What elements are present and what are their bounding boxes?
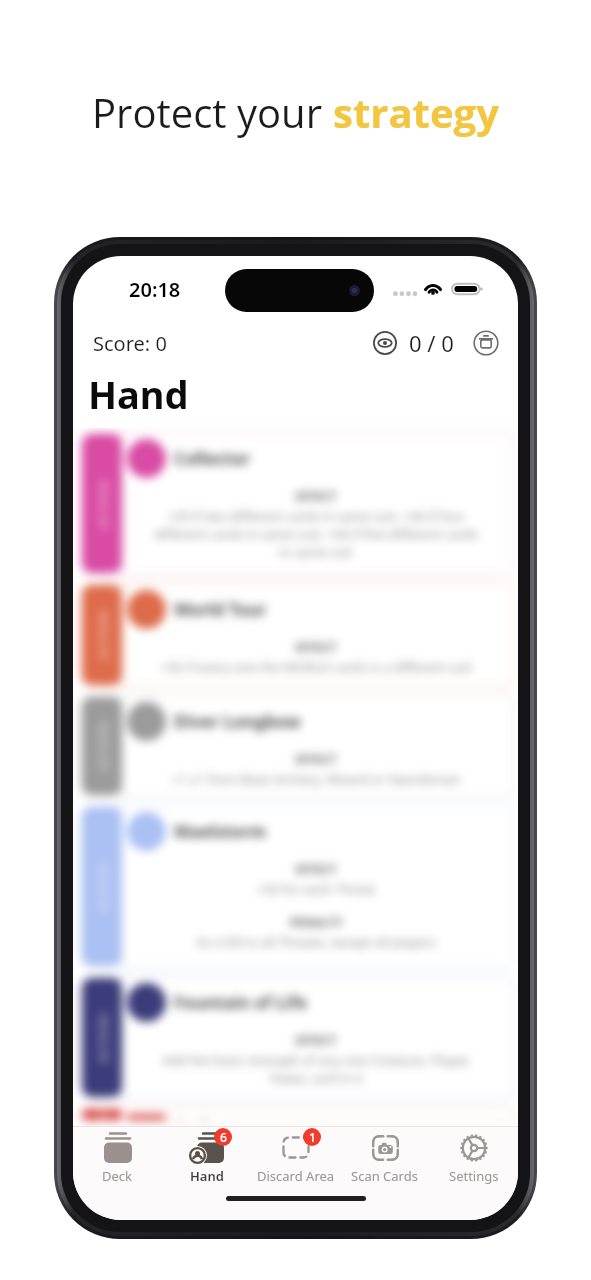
staticText: Score: 0 [93, 330, 167, 357]
staticText: EFFECT [127, 488, 505, 504]
staticText: Deck [102, 1167, 133, 1185]
staticText: Collector [174, 447, 251, 470]
staticText: Fountain of Life [174, 991, 308, 1014]
button[interactable]: 1 [251, 1127, 340, 1189]
staticText: PENALTY [127, 914, 505, 930]
staticText: +50 if every one the WORLD cards is a di… [147, 658, 485, 676]
staticText: ACTION [93, 609, 111, 660]
staticText: Hand [88, 368, 189, 420]
staticText: Maelstorm [174, 820, 267, 843]
staticText: Scan Cards [351, 1167, 418, 1185]
button[interactable]: Preview [373, 331, 397, 355]
button[interactable]: Delete [473, 330, 499, 356]
button[interactable]: ACTION [78, 1105, 517, 1124]
staticText: 0 / 0 [409, 328, 454, 358]
button[interactable]: Deck [73, 1127, 162, 1189]
button[interactable]: 6 [162, 1127, 251, 1189]
staticText: +20 if two different cards in same suit,… [147, 507, 485, 561]
button[interactable]: ACTION [78, 803, 517, 970]
staticText: 6 [220, 1129, 227, 1145]
staticText: +50 for each Threat [147, 880, 485, 898]
staticText: strategy [333, 85, 499, 139]
staticText: ACTION [93, 720, 111, 771]
staticText: ACTION [93, 1012, 111, 1063]
button[interactable]: ACTION [78, 974, 517, 1101]
button[interactable]: ACTION [78, 693, 517, 799]
button[interactable]: Settings [429, 1127, 518, 1189]
staticText: EFFECT [127, 1032, 505, 1048]
button[interactable]: Scan Cards [340, 1127, 429, 1189]
staticText: Settings [449, 1167, 499, 1185]
staticText: World Tour [174, 598, 267, 621]
staticText: 1 [309, 1129, 316, 1145]
staticText: +1 x1 from Base Archery, Wizard or Sword… [147, 770, 485, 788]
staticText: 20:18 [129, 276, 181, 303]
staticText: Protect your [92, 85, 333, 139]
button[interactable]: ACTION [78, 581, 517, 689]
staticText: Add the basic strength of any one Creatu… [147, 1051, 485, 1087]
staticText: 3x x100 in all Threats, except all playe… [147, 933, 485, 951]
staticText: Hand [190, 1167, 224, 1185]
staticText: EFFECT [127, 751, 505, 767]
staticText: Discard Area [257, 1167, 335, 1185]
staticText: Diver Longbow [174, 710, 301, 733]
staticText: EFFECT [127, 639, 505, 655]
staticText: EFFECT [127, 861, 505, 877]
staticText: ACTION [93, 1109, 111, 1120]
button[interactable]: ACTION [78, 430, 517, 577]
staticText: ACTION [93, 478, 111, 529]
